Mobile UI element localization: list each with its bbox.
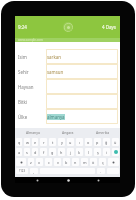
staticText: j [70,150,71,155]
button[interactable]: r [40,138,47,146]
button[interactable]: ö [90,158,97,166]
staticText: Almanya [26,130,40,135]
button[interactable]: . [97,168,105,174]
button[interactable]: v [54,158,61,166]
staticText: a [18,150,21,155]
button[interactable]: w [24,138,30,146]
button[interactable]: ı [76,138,83,146]
staticText: Ülke [18,114,28,120]
button[interactable]: c [45,158,52,166]
button[interactable]: u [67,138,74,146]
staticText: , [33,169,35,174]
staticText: y [61,140,63,145]
staticText: Isim [18,54,27,60]
button[interactable]: j [67,148,74,156]
button[interactable]: Hayvan [18,79,118,94]
staticText: f [43,150,45,155]
staticText: . [100,169,102,174]
button[interactable]: App logo [63,22,73,32]
button[interactable]: q [16,138,22,146]
staticText: p [96,140,99,145]
staticText: e [34,140,37,145]
button[interactable]: , [30,168,38,174]
button[interactable]: g [49,148,56,156]
button[interactable]: t [49,138,56,146]
button[interactable]: ?123 [16,168,28,174]
button[interactable]: x [36,158,43,166]
button[interactable]: s [24,148,30,156]
button[interactable]: ç [99,158,106,166]
staticText: Bitki [18,99,28,105]
button[interactable]: i [103,148,110,156]
staticText: c [48,160,50,165]
staticText: l [88,150,89,155]
button[interactable]: f [40,148,47,156]
staticText: m [83,160,87,165]
button[interactable]: Bitki [18,94,118,109]
button[interactable]: d [32,148,38,156]
button[interactable]: Sehir [18,64,118,79]
staticText: k [78,150,81,155]
staticText: ş [97,150,99,155]
button[interactable]: Back [29,177,45,183]
button[interactable]: ğ [103,138,110,146]
staticText: Hayvan [18,84,34,90]
staticText: sarkan [47,54,61,60]
staticText: 4 Days [102,24,117,30]
button[interactable]: e [32,138,38,146]
button[interactable]: Home [60,177,76,183]
staticText: Amerika [96,130,110,135]
staticText: u [69,140,72,145]
staticText: ğ [105,140,108,145]
button[interactable]: p [94,138,101,146]
staticText: r [43,140,45,145]
staticText: g [51,150,54,155]
staticText: n [74,160,77,165]
button[interactable]: Angara [50,128,85,137]
staticText: ı [79,140,80,145]
staticText: ö [92,160,95,165]
button[interactable]: z [28,158,34,166]
button[interactable]: m [81,158,88,166]
staticText: t [52,140,54,145]
staticText: h [60,150,63,155]
button[interactable]: h [58,148,65,156]
button[interactable]: Backspace [108,158,119,166]
staticText: almanya [47,114,65,120]
staticText: Sehir [18,69,29,75]
button[interactable]: n [72,158,79,166]
staticText: w [26,140,29,145]
staticText: ?123 [19,169,26,173]
button[interactable]: l [85,148,92,156]
button[interactable]: a [16,148,22,156]
staticText: s [26,150,28,155]
button[interactable]: ş [94,148,101,156]
button[interactable]: Amerika [85,128,120,137]
staticText: 9:24 [18,24,27,30]
button[interactable]: Almanya [15,128,50,137]
button[interactable]: Isim [18,49,118,64]
staticText: o [87,140,90,145]
button[interactable]: y [58,138,65,146]
button[interactable]: b [63,158,70,166]
button[interactable]: k [76,148,83,156]
button[interactable]: ü [112,138,119,146]
staticText: z [30,160,32,165]
staticText: ç [102,160,104,165]
staticText: ü [114,140,117,145]
staticText: x [38,160,41,165]
button[interactable]: Enter [112,148,119,156]
staticText: i [106,150,107,155]
staticText: Angara [62,130,74,135]
button[interactable]: o [85,138,92,146]
button[interactable]: Shift [16,158,26,166]
button[interactable]: Ülke [18,109,118,124]
staticText: samsun [47,69,64,75]
staticText: q [18,140,21,145]
staticText: www.sample.com [18,38,43,42]
staticText: d [34,150,37,155]
button[interactable]: Recent apps [90,177,106,183]
staticText: b [65,160,68,165]
